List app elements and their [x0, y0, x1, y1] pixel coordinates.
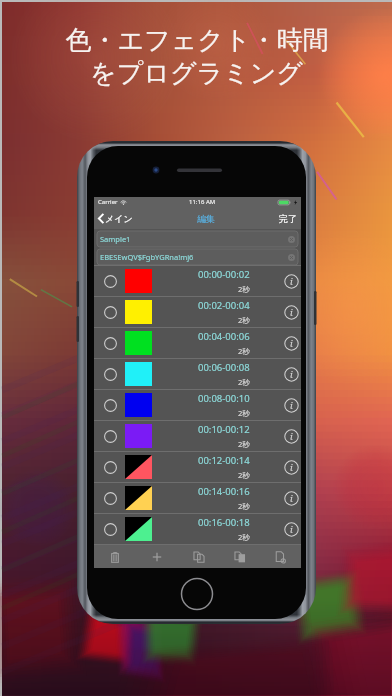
staticText: 2秒: [238, 408, 250, 418]
button[interactable]: Clear: [288, 236, 295, 243]
button[interactable]: Info: [283, 366, 299, 382]
button[interactable]: メイン: [97, 211, 134, 226]
button[interactable]: 完了: [278, 211, 298, 226]
button[interactable]: 00:12-00:14: [94, 452, 301, 483]
staticText: 2秒: [238, 284, 250, 294]
button[interactable]: 00:14-00:16: [94, 483, 301, 514]
button[interactable]: Info: [283, 397, 299, 413]
staticText: 2秒: [238, 377, 250, 387]
staticText: i: [290, 368, 293, 380]
staticText: 2秒: [238, 470, 250, 480]
button[interactable]: Add: [136, 545, 178, 568]
button[interactable]: EBESEwQV$FgbYGRna!mj6: [97, 249, 298, 265]
staticText: 2秒: [238, 532, 250, 542]
staticText: i: [290, 399, 293, 411]
staticText: i: [290, 523, 293, 535]
button[interactable]: Info: [283, 428, 299, 444]
staticText: 色・エフェクト・時間: [65, 24, 329, 57]
staticText: 2秒: [238, 315, 250, 325]
staticText: 編集: [197, 213, 215, 224]
staticText: 00:14-00:16: [198, 485, 250, 498]
button[interactable]: Delete: [94, 545, 136, 568]
staticText: 完了: [279, 213, 297, 224]
staticText: Sample1: [100, 234, 131, 244]
staticText: 2秒: [238, 346, 250, 356]
button[interactable]: 00:02-00:04: [94, 297, 301, 328]
button[interactable]: Info: [283, 459, 299, 475]
button[interactable]: Copy: [178, 545, 219, 568]
staticText: i: [290, 306, 293, 318]
button[interactable]: 00:08-00:10: [94, 390, 301, 421]
staticText: 11:16 AM: [189, 198, 216, 206]
staticText: i: [290, 275, 293, 287]
staticText: EBESEwQV$FgbYGRna!mj6: [100, 252, 194, 262]
staticText: 2秒: [238, 439, 250, 449]
button[interactable]: Info: [283, 335, 299, 351]
staticText: 00:10-00:12: [198, 423, 250, 436]
button[interactable]: 00:00-00:02: [94, 266, 301, 297]
staticText: 2秒: [238, 501, 250, 511]
staticText: 00:02-00:04: [198, 299, 250, 312]
button[interactable]: Clear: [288, 254, 295, 261]
button[interactable]: Sample1: [97, 231, 298, 247]
staticText: i: [290, 461, 293, 473]
staticText: をプログラミング: [90, 57, 303, 90]
staticText: i: [290, 430, 293, 442]
staticText: 00:06-00:08: [198, 361, 250, 374]
staticText: メイン: [105, 213, 133, 224]
button[interactable]: Export: [260, 545, 301, 568]
staticText: 00:04-00:06: [198, 330, 250, 343]
staticText: Carrier: [98, 198, 118, 206]
staticText: 00:08-00:10: [198, 392, 250, 405]
button[interactable]: Info: [283, 273, 299, 289]
button[interactable]: 00:04-00:06: [94, 328, 301, 359]
button[interactable]: Paste: [219, 545, 260, 568]
staticText: 00:12-00:14: [198, 454, 250, 467]
button[interactable]: 00:16-00:18: [94, 514, 301, 545]
button[interactable]: 00:06-00:08: [94, 359, 301, 390]
staticText: 00:00-00:02: [198, 268, 250, 281]
staticText: 00:16-00:18: [198, 516, 250, 529]
button[interactable]: Info: [283, 521, 299, 537]
staticText: i: [290, 337, 293, 349]
staticText: i: [290, 492, 293, 504]
button[interactable]: Info: [283, 304, 299, 320]
button[interactable]: Info: [283, 490, 299, 506]
button[interactable]: 編集: [193, 211, 219, 226]
button[interactable]: 00:10-00:12: [94, 421, 301, 452]
